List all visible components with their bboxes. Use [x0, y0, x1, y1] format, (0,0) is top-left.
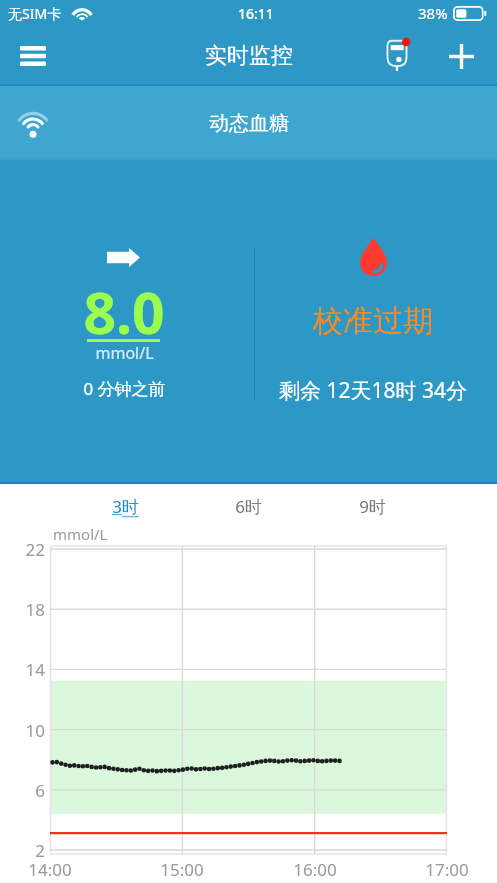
staticText: 校准过期	[313, 302, 433, 340]
staticText: 14	[1, 658, 45, 681]
staticText: 18	[1, 598, 45, 621]
staticText: 6	[1, 779, 45, 802]
button[interactable]: Menu	[0, 26, 66, 86]
staticText: 17:00	[417, 858, 477, 881]
button[interactable]: 6时	[218, 492, 278, 521]
staticText: 无SIM卡	[8, 4, 62, 23]
staticText: 0 分钟之前	[83, 377, 166, 400]
staticText: 实时监控	[205, 42, 293, 70]
button[interactable]: Device status	[369, 26, 425, 86]
button[interactable]: 3时	[95, 492, 155, 521]
staticText: 38%	[418, 3, 448, 23]
staticText: 15:00	[152, 858, 212, 881]
staticText: 16:11	[238, 4, 274, 23]
button[interactable]: Add	[425, 26, 497, 86]
staticText: 6时	[235, 495, 262, 518]
staticText: 剩余 12天18时 34分	[279, 376, 467, 405]
staticText: 22	[1, 538, 45, 561]
staticText: mmol/L	[53, 524, 108, 544]
staticText: 10	[1, 719, 45, 742]
staticText: 动态血糖	[209, 111, 289, 136]
staticText: 2	[1, 839, 45, 862]
button[interactable]: 动态血糖	[0, 86, 497, 160]
staticText: 3时	[112, 495, 139, 518]
staticText: 9时	[359, 495, 386, 518]
staticText: mmol/L	[95, 342, 154, 364]
staticText: 8.0	[83, 273, 165, 351]
staticText: 16:00	[285, 858, 345, 881]
button[interactable]: 9时	[342, 492, 402, 521]
staticText: 14:00	[20, 858, 80, 881]
